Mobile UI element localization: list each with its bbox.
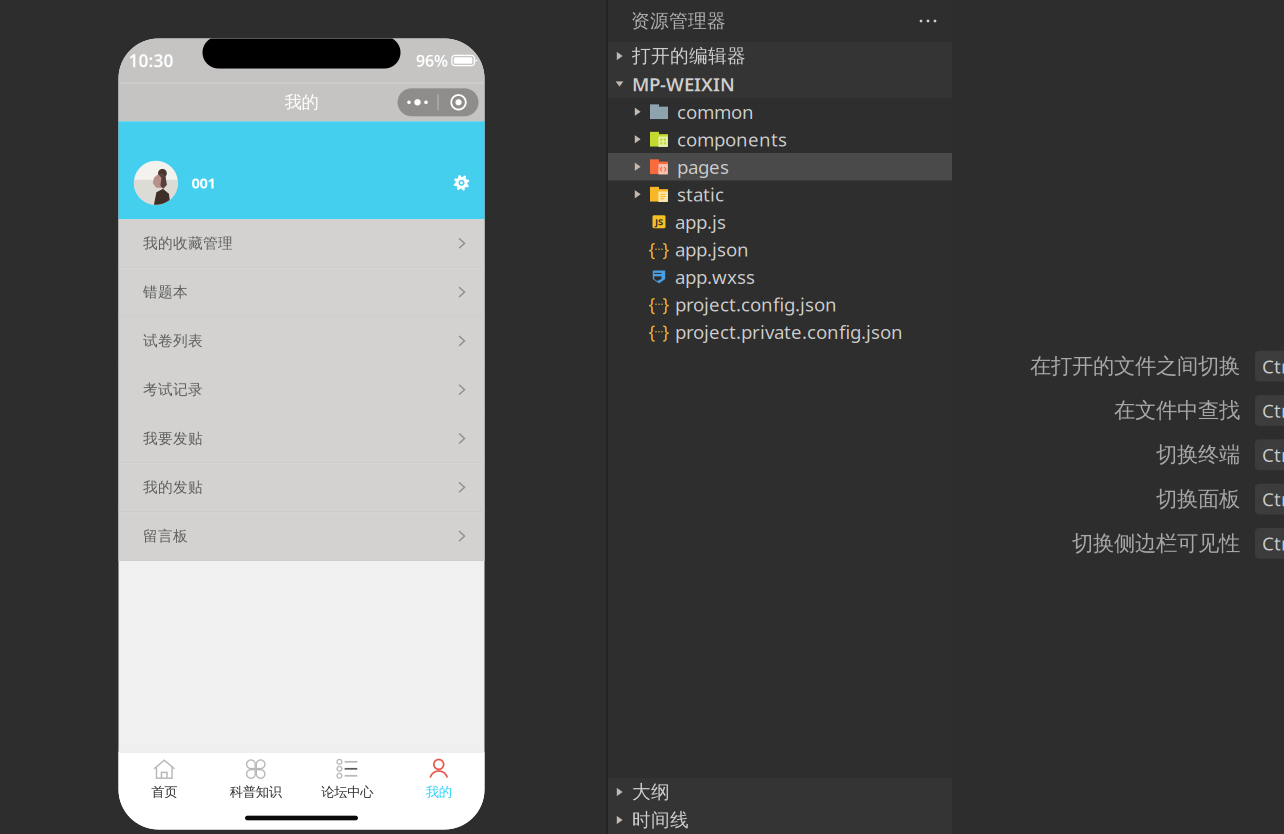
staticText: Ctrl + K xyxy=(1262,442,1284,467)
staticText: { xyxy=(648,320,655,343)
staticText: 论坛中心 xyxy=(321,784,373,800)
staticText: 我的 xyxy=(284,92,318,113)
staticText: common xyxy=(677,99,754,124)
staticText: 错题本 xyxy=(143,283,188,301)
staticText: 我要发贴 xyxy=(143,429,203,447)
button[interactable]: Settings xyxy=(453,175,469,191)
button[interactable]: components xyxy=(608,125,952,153)
staticText: } xyxy=(663,293,670,316)
staticText: Ctrl + K xyxy=(1262,354,1284,379)
staticText: } xyxy=(663,320,670,343)
staticText: Ctrl + K xyxy=(1262,398,1284,423)
button[interactable]: 考试记录 xyxy=(118,366,484,414)
staticText: app.json xyxy=(675,237,749,262)
staticText: JS xyxy=(655,216,663,228)
staticText: 考试记录 xyxy=(143,381,203,399)
staticText: project.config.json xyxy=(675,292,837,317)
button[interactable]: 试卷列表 xyxy=(118,317,484,366)
staticText: 在文件中查找 xyxy=(1114,397,1240,423)
staticText: pages xyxy=(677,154,729,179)
staticText: 时间线 xyxy=(632,808,689,831)
button[interactable]: 我的发贴 xyxy=(118,463,484,512)
button[interactable]: { xyxy=(608,290,952,318)
button[interactable]: 留言板 xyxy=(118,512,484,561)
button[interactable]: 时间线 xyxy=(608,806,952,834)
button[interactable]: 首页 xyxy=(118,754,210,804)
button[interactable]: common xyxy=(608,98,952,125)
staticText: 首页 xyxy=(151,784,177,800)
button[interactable]: { xyxy=(608,318,952,345)
button[interactable]: pages xyxy=(608,153,952,180)
button[interactable]: Menu xyxy=(397,88,478,116)
staticText: MP-WEIXIN xyxy=(632,72,735,96)
staticText: 留言板 xyxy=(143,527,188,545)
staticText: 我的收藏管理 xyxy=(143,234,233,252)
staticText: Ctrl + K xyxy=(1262,531,1284,556)
staticText: 我的 xyxy=(426,784,452,800)
button[interactable]: 我的 xyxy=(393,754,484,804)
button[interactable]: 科普知识 xyxy=(210,754,301,804)
staticText: Ctrl + K xyxy=(1262,487,1284,511)
staticText: app.wxss xyxy=(675,264,755,289)
staticText: 在打开的文件之间切换 xyxy=(1030,353,1240,379)
button[interactable]: MP-WEIXIN xyxy=(608,70,952,98)
button[interactable]: 论坛中心 xyxy=(301,754,393,804)
staticText: 大纲 xyxy=(632,780,670,803)
staticText: 资源管理器 xyxy=(631,9,726,32)
button[interactable]: 我要发贴 xyxy=(118,414,484,463)
staticText: 试卷列表 xyxy=(143,332,203,350)
button[interactable]: 大纲 xyxy=(608,778,952,806)
button[interactable]: { xyxy=(608,235,952,263)
staticText: 科普知识 xyxy=(230,784,282,800)
staticText: 96% xyxy=(416,50,448,71)
button[interactable]: 错题本 xyxy=(118,268,484,317)
button[interactable]: 打开的编辑器 xyxy=(608,42,952,70)
staticText: app.js xyxy=(675,209,726,234)
staticText: components xyxy=(677,127,787,152)
button[interactable]: More actions xyxy=(913,9,943,33)
staticText: 001 xyxy=(191,173,215,193)
button[interactable]: app.wxss xyxy=(608,263,952,290)
staticText: { xyxy=(648,238,655,261)
button[interactable]: 我的收藏管理 xyxy=(118,219,484,268)
staticText: 切换终端 xyxy=(1156,442,1240,468)
staticText: 切换侧边栏可见性 xyxy=(1072,530,1240,556)
staticText: { xyxy=(648,293,655,316)
staticText: 10:30 xyxy=(128,49,173,72)
button[interactable]: JS xyxy=(608,208,952,235)
staticText: 打开的编辑器 xyxy=(632,44,746,67)
staticText: } xyxy=(663,238,670,261)
staticText: project.private.config.json xyxy=(675,319,903,344)
staticText: 切换面板 xyxy=(1156,486,1240,512)
staticText: 我的发贴 xyxy=(143,478,203,496)
staticText: static xyxy=(677,182,724,207)
button[interactable]: static xyxy=(608,180,952,208)
